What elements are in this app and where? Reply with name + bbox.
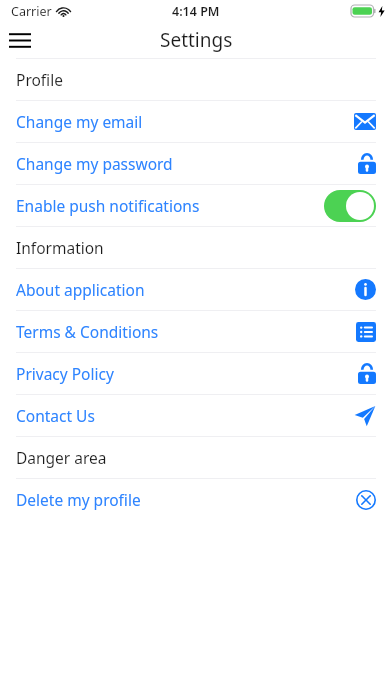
staticText: Carrier — [11, 3, 52, 20]
other: Change my password — [358, 153, 376, 174]
button[interactable]: Enable push notifications — [0, 185, 392, 226]
other: Privacy Policy — [358, 363, 376, 384]
staticText: Information — [16, 237, 104, 258]
staticText: Privacy Policy — [16, 363, 114, 384]
other: Terms and Conditions — [356, 322, 376, 342]
button[interactable]: Change my email — [0, 101, 392, 142]
staticText: Delete my profile — [16, 489, 141, 510]
other: Contact Us — [354, 405, 376, 427]
staticText: 4:14 PM — [172, 3, 220, 20]
staticText: Danger area — [16, 447, 107, 468]
staticText: Change my password — [16, 153, 173, 174]
other: Delete my profile — [356, 490, 376, 510]
staticText: Enable push notifications — [16, 195, 200, 216]
button[interactable]: Contact Us — [0, 395, 392, 436]
button[interactable]: Change my password — [0, 143, 392, 184]
other: About application — [355, 279, 376, 300]
staticText: Profile — [16, 69, 63, 90]
button[interactable]: Terms & Conditions — [0, 311, 392, 352]
other: Change my email — [354, 113, 376, 130]
button[interactable]: Menu — [0, 22, 40, 58]
button[interactable]: About application — [0, 269, 392, 310]
staticText: Terms & Conditions — [16, 321, 159, 342]
staticText: About application — [16, 279, 145, 300]
staticText: Settings — [160, 27, 233, 53]
staticText: Contact Us — [16, 405, 95, 426]
button[interactable]: Privacy Policy — [0, 353, 392, 394]
staticText: Change my email — [16, 111, 143, 132]
button[interactable]: Enable push notifications toggle — [324, 190, 376, 222]
button[interactable]: Delete my profile — [0, 479, 392, 520]
